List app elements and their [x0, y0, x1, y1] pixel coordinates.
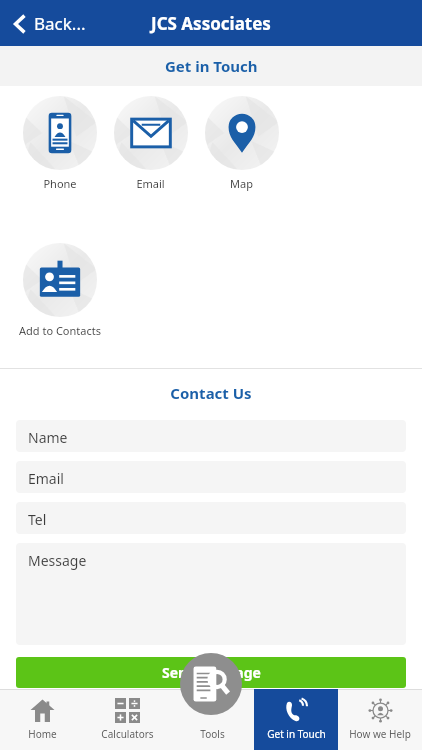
staticText: Map: [230, 176, 253, 191]
button[interactable]: Email: [105, 96, 196, 191]
staticText: Tel: [28, 510, 47, 529]
staticText: Phone: [43, 176, 77, 191]
button[interactable]: Tools: [170, 689, 254, 750]
staticText: Send Message: [162, 663, 261, 682]
button[interactable]: Get in Touch: [254, 689, 338, 750]
button[interactable]: Name: [16, 420, 406, 452]
staticText: Email: [136, 176, 165, 191]
button[interactable]: Add to Contacts: [14, 243, 105, 338]
staticText: Name: [28, 428, 68, 447]
staticText: Add to Contacts: [19, 323, 101, 338]
button[interactable]: Send Message: [16, 657, 406, 688]
button[interactable]: Phone: [14, 96, 105, 191]
button[interactable]: Home: [0, 689, 85, 750]
button[interactable]: Calculators: [85, 689, 170, 750]
staticText: How we Help: [349, 727, 411, 741]
staticText: Contact Us: [0, 383, 422, 403]
staticText: Home: [28, 727, 57, 741]
button[interactable]: Map: [196, 96, 287, 191]
button[interactable]: How we Help: [338, 689, 422, 750]
button[interactable]: Back...: [8, 8, 90, 39]
staticText: Calculators: [101, 727, 154, 741]
staticText: Email: [28, 469, 64, 488]
staticText: JCS Associates: [151, 12, 271, 35]
staticText: Get in Touch: [267, 727, 326, 741]
staticText: Back...: [34, 12, 86, 35]
button[interactable]: Tools: [180, 653, 242, 715]
button[interactable]: Tel: [16, 502, 406, 534]
staticText: Message: [28, 551, 87, 570]
button[interactable]: Message: [16, 543, 406, 645]
button[interactable]: Email: [16, 461, 406, 493]
staticText: Tools: [200, 727, 225, 741]
staticText: Get in Touch: [165, 56, 258, 76]
